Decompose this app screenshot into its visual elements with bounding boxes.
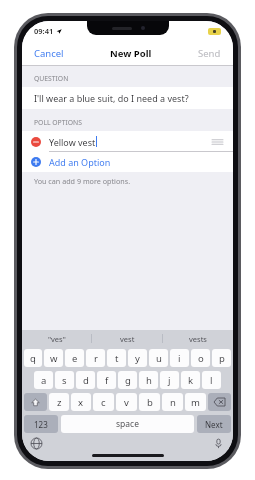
- staticText: p: [219, 352, 225, 365]
- staticText: c: [101, 396, 106, 409]
- button[interactable]: Next: [197, 415, 231, 433]
- staticText: Add an Option: [49, 156, 111, 168]
- staticText: space: [116, 418, 139, 430]
- staticText: POLL OPTIONS: [34, 118, 83, 127]
- staticText: 123: [34, 419, 48, 430]
- button[interactable]: f: [97, 371, 116, 389]
- staticText: vests: [189, 334, 207, 344]
- button[interactable]: space: [61, 415, 194, 433]
- staticText: e: [72, 352, 78, 365]
- button[interactable]: q: [24, 349, 42, 367]
- button[interactable]: p: [212, 349, 231, 367]
- button[interactable]: v: [116, 393, 137, 411]
- staticText: i: [178, 352, 181, 365]
- button[interactable]: w: [44, 349, 63, 367]
- staticText: n: [170, 396, 176, 409]
- staticText: Cancel: [34, 47, 64, 60]
- button[interactable]: "ves": [22, 330, 91, 347]
- staticText: f: [105, 374, 109, 387]
- staticText: Yellow vest: [49, 136, 96, 148]
- button[interactable]: Shift: [24, 393, 47, 411]
- button[interactable]: Change keyboard: [31, 438, 42, 449]
- button[interactable]: l: [202, 371, 221, 389]
- button[interactable]: Cancel: [32, 44, 66, 63]
- button[interactable]: Add an Option: [22, 152, 233, 172]
- staticText: k: [188, 374, 194, 387]
- staticText: r: [94, 352, 98, 365]
- staticText: h: [146, 374, 152, 387]
- button[interactable]: e: [65, 349, 84, 367]
- button[interactable]: Backspace: [208, 393, 231, 411]
- button[interactable]: h: [139, 371, 158, 389]
- staticText: u: [156, 352, 162, 365]
- staticText: x: [78, 396, 84, 409]
- button[interactable]: Remove option: [22, 131, 233, 152]
- staticText: d: [83, 374, 89, 387]
- button[interactable]: 123: [24, 415, 58, 433]
- other: Reorder: [212, 138, 223, 146]
- button[interactable]: d: [76, 371, 95, 389]
- button[interactable]: Remove option: [31, 137, 41, 147]
- staticText: g: [125, 374, 131, 387]
- button[interactable]: k: [181, 371, 200, 389]
- button[interactable]: i: [170, 349, 189, 367]
- button[interactable]: c: [93, 393, 114, 411]
- button[interactable]: vest: [92, 330, 162, 347]
- staticText: b: [147, 396, 153, 409]
- button[interactable]: x: [71, 393, 91, 411]
- staticText: I'll wear a blue suit, do I need a vest?: [34, 92, 189, 104]
- button[interactable]: I'll wear a blue suit, do I need a vest?: [22, 87, 233, 109]
- staticText: Send: [198, 47, 221, 60]
- button[interactable]: m: [185, 393, 206, 411]
- staticText: New Poll: [110, 47, 152, 60]
- staticText: o: [198, 352, 204, 365]
- button[interactable]: j: [160, 371, 179, 389]
- staticText: "ves": [48, 334, 66, 344]
- staticText: t: [115, 352, 119, 365]
- staticText: w: [50, 352, 58, 365]
- button[interactable]: g: [118, 371, 137, 389]
- button[interactable]: Dictate: [213, 438, 224, 449]
- staticText: y: [135, 352, 140, 365]
- staticText: z: [57, 396, 62, 409]
- button[interactable]: b: [139, 393, 160, 411]
- button[interactable]: s: [55, 371, 74, 389]
- button[interactable]: o: [191, 349, 210, 367]
- staticText: l: [210, 374, 213, 387]
- staticText: j: [168, 374, 171, 387]
- button[interactable]: r: [86, 349, 105, 367]
- staticText: m: [191, 396, 200, 409]
- button[interactable]: vests: [163, 330, 233, 347]
- button[interactable]: y: [128, 349, 147, 367]
- staticText: q: [30, 352, 36, 365]
- staticText: 09:41: [34, 26, 54, 36]
- button[interactable]: z: [49, 393, 69, 411]
- button[interactable]: Send: [196, 44, 223, 63]
- button[interactable]: t: [107, 349, 126, 367]
- staticText: a: [41, 374, 47, 387]
- staticText: You can add 9 more options.: [34, 176, 131, 186]
- staticText: QUESTION: [34, 74, 69, 83]
- button[interactable]: u: [149, 349, 168, 367]
- button[interactable]: n: [162, 393, 183, 411]
- staticText: Next: [205, 419, 223, 430]
- button[interactable]: a: [34, 371, 53, 389]
- staticText: v: [124, 396, 129, 409]
- staticText: vest: [120, 334, 135, 344]
- staticText: s: [62, 374, 67, 387]
